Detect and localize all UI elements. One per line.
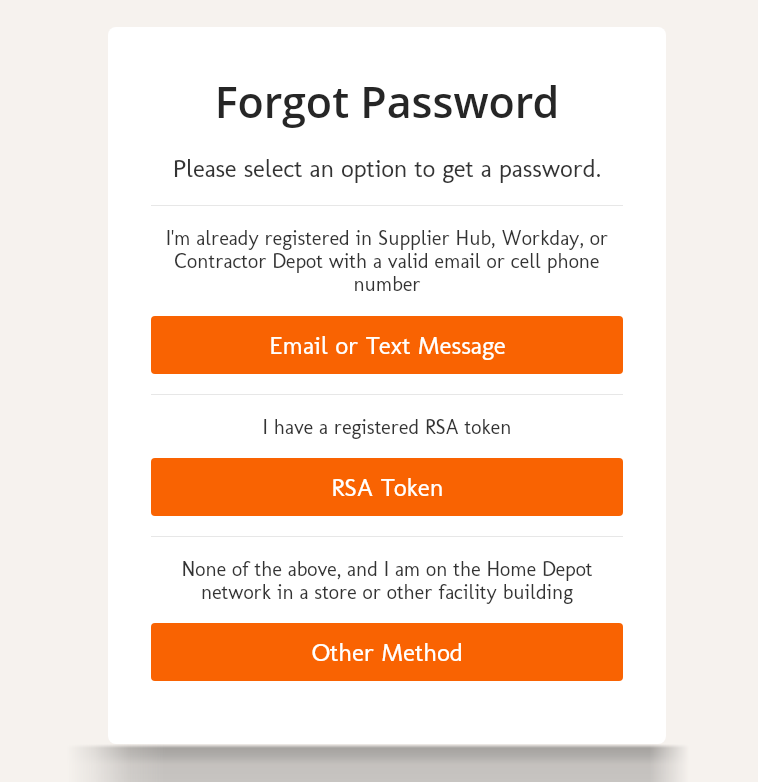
button[interactable]: RSA Token xyxy=(151,458,623,516)
button[interactable]: Email or Text Message xyxy=(151,316,623,374)
staticText: Forgot Password xyxy=(108,72,666,131)
staticText: I have a registered RSA token xyxy=(151,415,623,440)
staticText: Email or Text Message xyxy=(269,330,506,360)
staticText: I'm already registered in Supplier Hub, … xyxy=(151,226,623,296)
button[interactable]: Other Method xyxy=(151,623,623,681)
staticText: Other Method xyxy=(312,637,463,667)
staticText: Please select an option to get a passwor… xyxy=(108,153,666,183)
staticText: RSA Token xyxy=(331,472,444,502)
staticText: None of the above, and I am on the Home … xyxy=(151,557,623,604)
